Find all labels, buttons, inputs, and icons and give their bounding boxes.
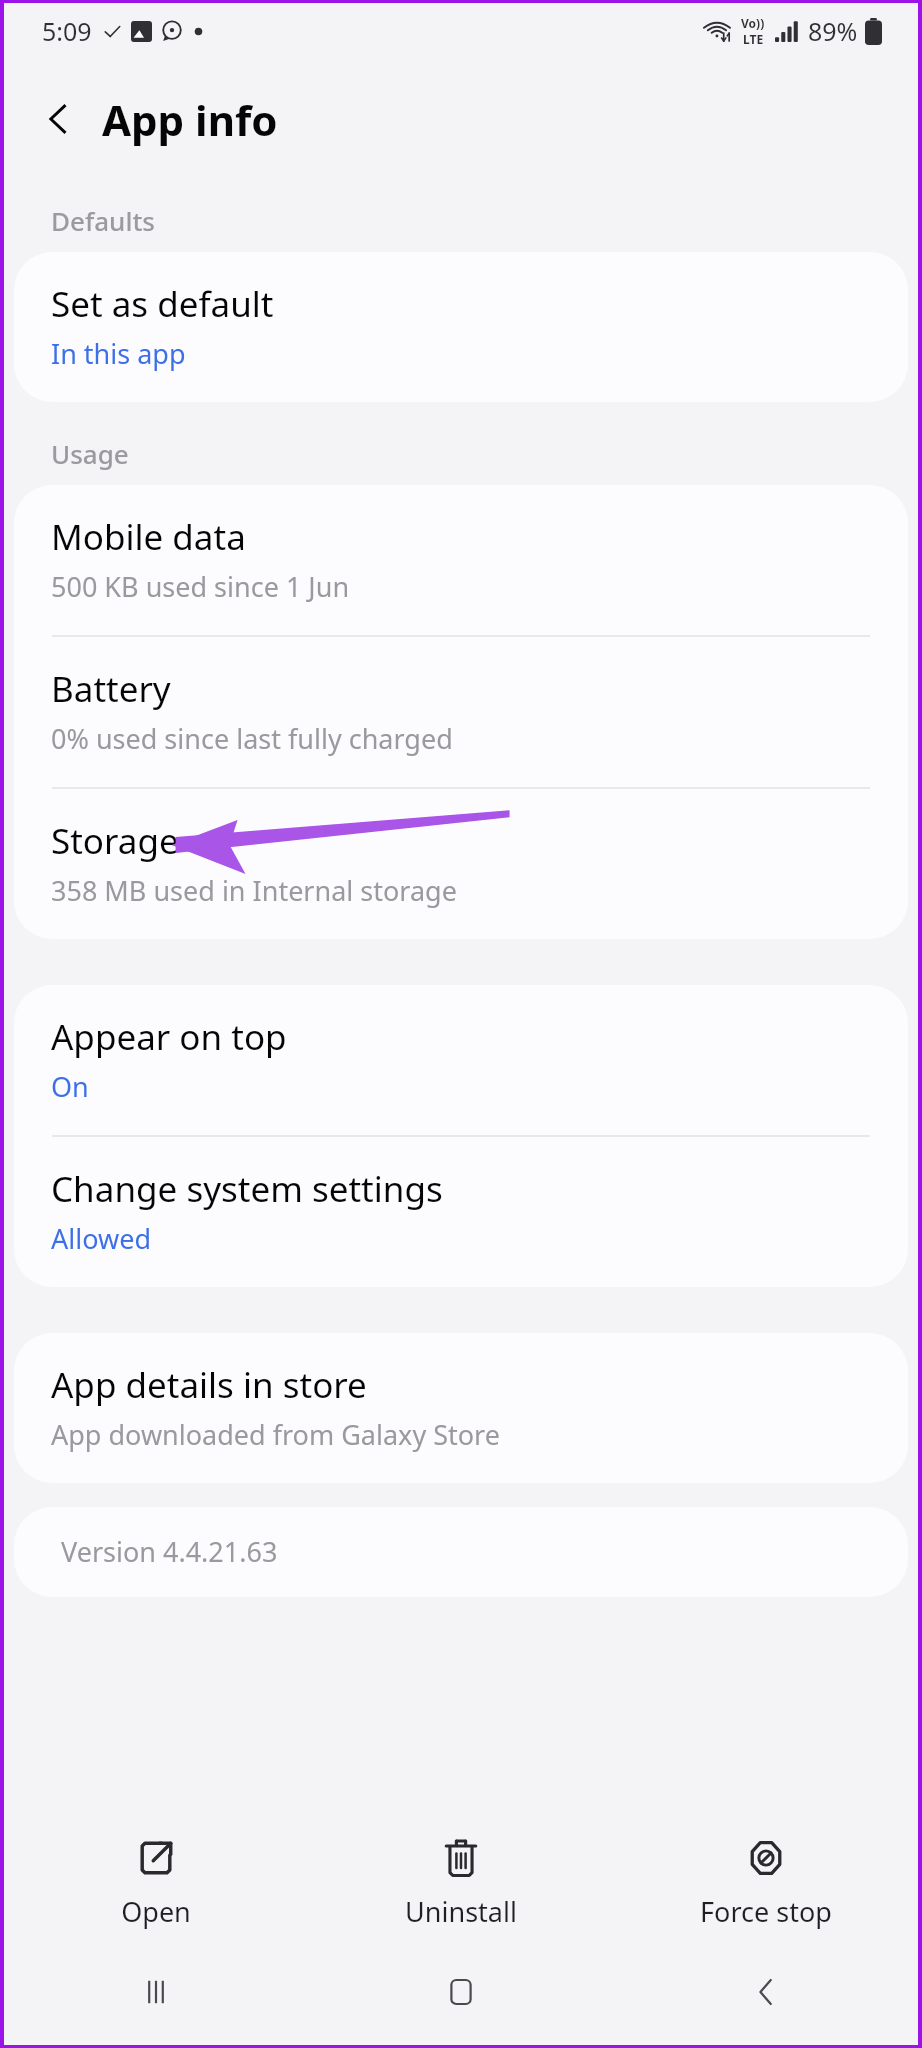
- button[interactable]: Home: [308, 1939, 613, 2045]
- staticText: 5:09: [42, 14, 92, 48]
- staticText: Force stop: [700, 1893, 832, 1930]
- button[interactable]: Recents: [4, 1939, 308, 2045]
- staticText: On: [51, 1068, 89, 1105]
- staticText: Mobile data: [51, 513, 246, 561]
- button[interactable]: Force stop: [613, 1821, 918, 1939]
- staticText: 0% used since last fully charged: [51, 720, 453, 757]
- button[interactable]: Appear on top: [14, 985, 908, 1135]
- button[interactable]: Uninstall: [308, 1821, 613, 1939]
- staticText: Change system settings: [51, 1165, 443, 1213]
- staticText: 358 MB used in Internal storage: [51, 872, 457, 909]
- staticText: Vo)): [741, 15, 765, 31]
- button[interactable]: Mobile data: [14, 485, 908, 635]
- staticText: Set as default: [51, 280, 274, 328]
- button[interactable]: Open: [4, 1821, 308, 1939]
- button[interactable]: App details in store: [14, 1333, 908, 1483]
- staticText: Appear on top: [51, 1013, 287, 1061]
- staticText: Battery: [51, 665, 171, 713]
- staticText: App downloaded from Galaxy Store: [51, 1416, 500, 1453]
- staticText: App info: [102, 91, 278, 148]
- button[interactable]: Storage: [14, 789, 908, 939]
- staticText: Version 4.4.21.63: [61, 1533, 278, 1570]
- staticText: Uninstall: [405, 1893, 517, 1930]
- button[interactable]: Back: [613, 1939, 918, 2045]
- staticText: Defaults: [51, 203, 156, 238]
- button[interactable]: Version 4.4.21.63: [14, 1507, 908, 1597]
- staticText: LTE: [743, 31, 764, 47]
- button[interactable]: Back: [30, 90, 88, 148]
- button[interactable]: Change system settings: [14, 1137, 908, 1287]
- button[interactable]: Battery: [14, 637, 908, 787]
- staticText: App details in store: [51, 1361, 367, 1409]
- staticText: Usage: [51, 436, 129, 471]
- staticText: Storage: [51, 817, 179, 865]
- button[interactable]: Set as default: [14, 252, 908, 402]
- staticText: 500 KB used since 1 Jun: [51, 568, 350, 605]
- staticText: Open: [121, 1893, 191, 1930]
- staticText: Allowed: [51, 1220, 152, 1257]
- staticText: In this app: [51, 335, 186, 372]
- staticText: 89%: [808, 14, 858, 48]
